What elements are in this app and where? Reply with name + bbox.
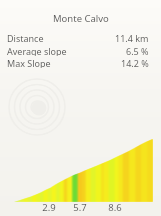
button[interactable]: 8.6	[103, 201, 127, 214]
button[interactable]: Max Slope	[0, 57, 161, 68]
staticText: 5.7	[68, 201, 92, 214]
button[interactable]: Monte Calvo route	[0, 0, 161, 36]
staticText: 2.9	[37, 201, 61, 214]
staticText: 11.4 km	[115, 32, 149, 43]
button[interactable]: 5.7	[68, 201, 92, 214]
staticText: Max Slope	[7, 57, 51, 68]
staticText: Distance	[7, 32, 44, 43]
button[interactable]: Distance	[0, 32, 161, 43]
button[interactable]: 2.9	[37, 201, 61, 214]
button[interactable]: Average slope	[0, 45, 161, 56]
staticText: 6.5 %	[126, 45, 149, 56]
staticText: 8.6	[103, 201, 127, 214]
staticText: Average slope	[7, 45, 67, 56]
staticText: Monte Calvo	[53, 12, 109, 25]
staticText: 14.2 %	[121, 57, 149, 68]
